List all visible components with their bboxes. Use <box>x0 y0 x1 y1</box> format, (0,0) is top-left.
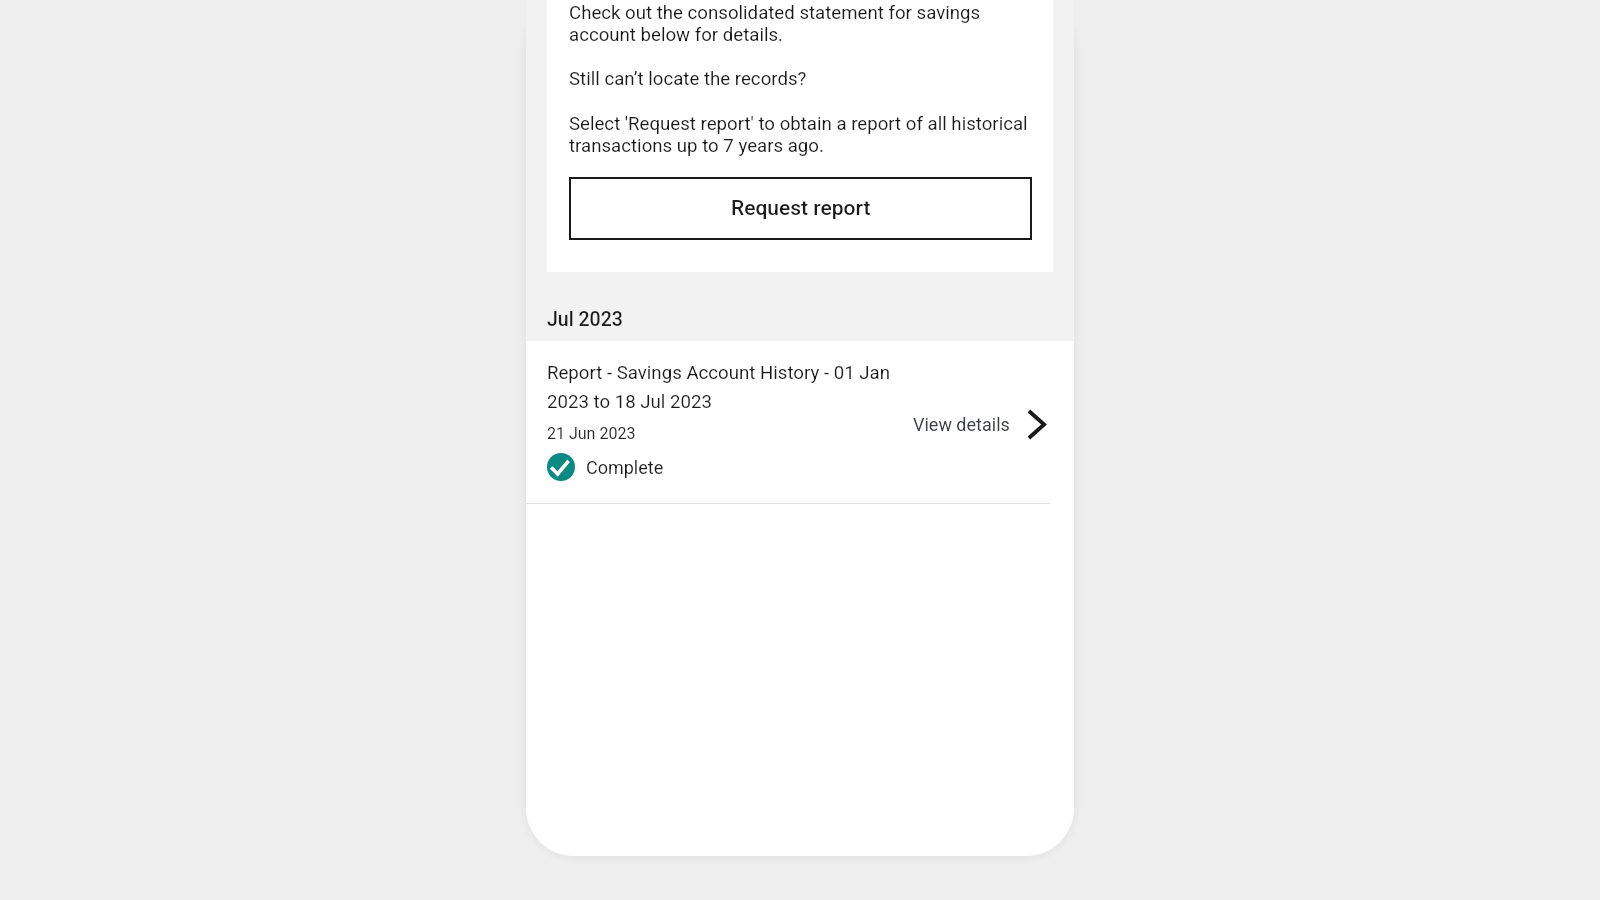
other: View details <box>1027 409 1046 440</box>
button[interactable]: Request report <box>569 177 1032 240</box>
staticText: Jul 2023 <box>547 308 623 331</box>
staticText: Select 'Request report' to obtain a repo… <box>569 113 1032 156</box>
staticText: Complete <box>586 457 664 478</box>
staticText: Still can’t locate the records? <box>569 68 807 90</box>
button[interactable]: Report - Savings Account History - 01 Ja… <box>526 341 1074 503</box>
staticText: View details <box>913 414 1010 435</box>
button[interactable]: View details <box>913 404 1046 440</box>
staticText: Request report <box>731 196 871 221</box>
staticText: Check out the consolidated statement for… <box>569 2 1032 45</box>
staticText: 21 Jun 2023 <box>547 424 636 443</box>
staticText: Report - Savings Account History - 01 Ja… <box>547 362 913 413</box>
